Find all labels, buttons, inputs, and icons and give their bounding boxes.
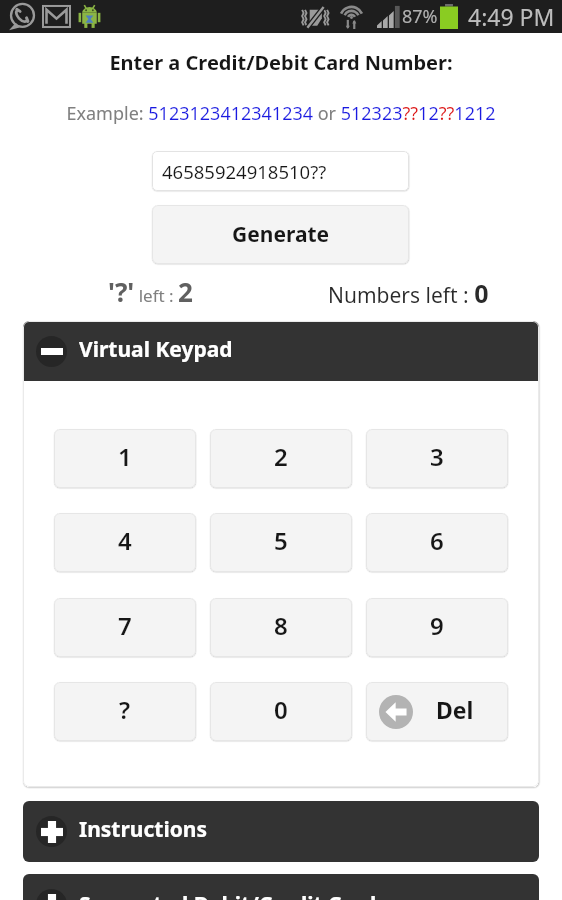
staticText: 1	[118, 440, 132, 473]
staticText: Del	[436, 694, 474, 725]
staticText: 9	[430, 609, 444, 642]
staticText: Example: 5123123412341234 or 512323??12?…	[0, 101, 562, 126]
button[interactable]: 3	[366, 429, 508, 488]
button[interactable]: 46585924918510??	[152, 151, 409, 191]
button[interactable]: 1	[54, 429, 196, 488]
button[interactable]: 8	[210, 598, 352, 657]
staticText: Numbers left : 0	[328, 276, 489, 310]
button[interactable]: Virtual Keypad	[23, 321, 539, 381]
staticText: ?	[119, 693, 131, 726]
button[interactable]: 7	[54, 598, 196, 657]
button[interactable]: 6	[366, 513, 508, 572]
staticText: Instructions	[79, 815, 208, 844]
staticText: 6	[430, 524, 444, 557]
staticText: 87%	[402, 4, 438, 29]
staticText: 8	[274, 609, 288, 642]
staticText: '?' left : 2	[108, 274, 193, 309]
button[interactable]: 5	[210, 513, 352, 572]
button[interactable]: Instructions	[23, 801, 539, 862]
button[interactable]: Supported Debit/Credit Cards	[23, 874, 539, 900]
staticText: 3	[430, 440, 444, 473]
staticText: 0	[274, 693, 288, 726]
button[interactable]: 2	[210, 429, 352, 488]
staticText: Enter a Credit/Debit Card Number:	[0, 49, 562, 76]
staticText: Generate	[232, 220, 330, 249]
staticText: 4:49 PM	[468, 1, 555, 32]
staticText: 7	[118, 609, 132, 642]
button[interactable]: 9	[366, 598, 508, 657]
other: Delete	[379, 695, 413, 729]
staticText: Virtual Keypad	[79, 335, 233, 364]
button[interactable]: 0	[210, 682, 352, 741]
staticText: Supported Debit/Credit Cards	[79, 890, 387, 900]
staticText: 4	[118, 524, 132, 557]
button[interactable]: 4	[54, 513, 196, 572]
staticText: 46585924918510??	[162, 159, 327, 184]
staticText: 5	[274, 524, 288, 557]
button[interactable]: Delete	[366, 682, 508, 741]
staticText: 2	[274, 440, 288, 473]
button[interactable]: ?	[54, 682, 196, 741]
button[interactable]: Generate	[152, 205, 409, 264]
